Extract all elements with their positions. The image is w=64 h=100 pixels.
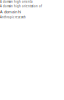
staticText: A domain high orienta (0, 0, 32, 3)
staticText: Anthropic research (0, 15, 26, 19)
staticText: A domain hi (0, 9, 21, 14)
staticText: A domain high orientation of (0, 4, 42, 8)
